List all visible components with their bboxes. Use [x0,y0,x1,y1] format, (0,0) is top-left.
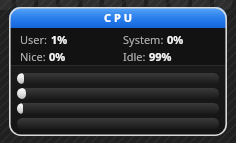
staticText: 0% [49,49,66,64]
staticText: System: [123,32,164,47]
staticText: Nice: [20,49,46,64]
button[interactable]: C P U [9,7,227,28]
button[interactable] [17,118,219,129]
staticText: 0% [167,32,184,47]
other: CPU monitor panel [9,7,227,136]
staticText: 99% [149,49,172,64]
button[interactable] [17,88,219,99]
staticText: User: [20,32,48,47]
button[interactable] [17,103,219,114]
staticText: C P U [104,10,132,25]
staticText: 1% [51,32,68,47]
staticText: Idle: [123,49,146,64]
button[interactable] [17,73,219,84]
